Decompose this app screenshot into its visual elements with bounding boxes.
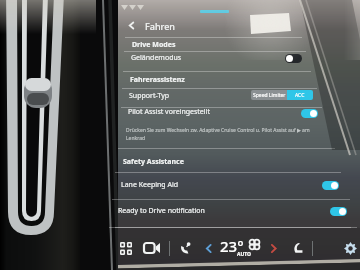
staticText: Drücken Sie zum Wechseln zw. Adaptive Cr… [126,127,310,142]
button[interactable]: Increase temperature [262,237,284,259]
button[interactable]: Apps [115,237,137,259]
staticText: Ready to Drive notification [118,206,205,216]
staticText: Speed Limiter [253,92,286,99]
button[interactable]: Settings [339,237,360,259]
staticText: Lane Keeping Aid [121,180,179,190]
button[interactable]: Back [118,18,145,33]
button[interactable]: Phone [175,237,197,259]
staticText: Support-Typ [129,91,170,101]
button[interactable]: Decrease temperature [197,237,219,259]
button[interactable]: ACC [287,90,313,100]
button[interactable]: Toggle [301,109,318,118]
staticText: Safety Assistance [123,157,184,167]
button[interactable]: Toggle [285,54,302,63]
button[interactable]: Camera [141,237,163,259]
staticText: ACC [295,92,305,99]
staticText: Pilot Assist voreingestellt [128,107,210,117]
staticText: Fahren [145,20,175,32]
button[interactable]: Seat heating [287,237,309,259]
button[interactable]: Toggle [330,207,347,216]
button[interactable]: Toggle [322,181,339,190]
staticText: Drive Modes [132,40,176,50]
staticText: Fahrerassistenz [130,75,185,85]
button[interactable]: Back [118,18,360,33]
button[interactable]: Speed Limiter [251,90,287,100]
button[interactable]: Climate [220,236,262,260]
staticText: AUTO [237,251,251,258]
staticText: 23° [220,236,244,256]
staticText: Geländemodus [131,53,182,63]
